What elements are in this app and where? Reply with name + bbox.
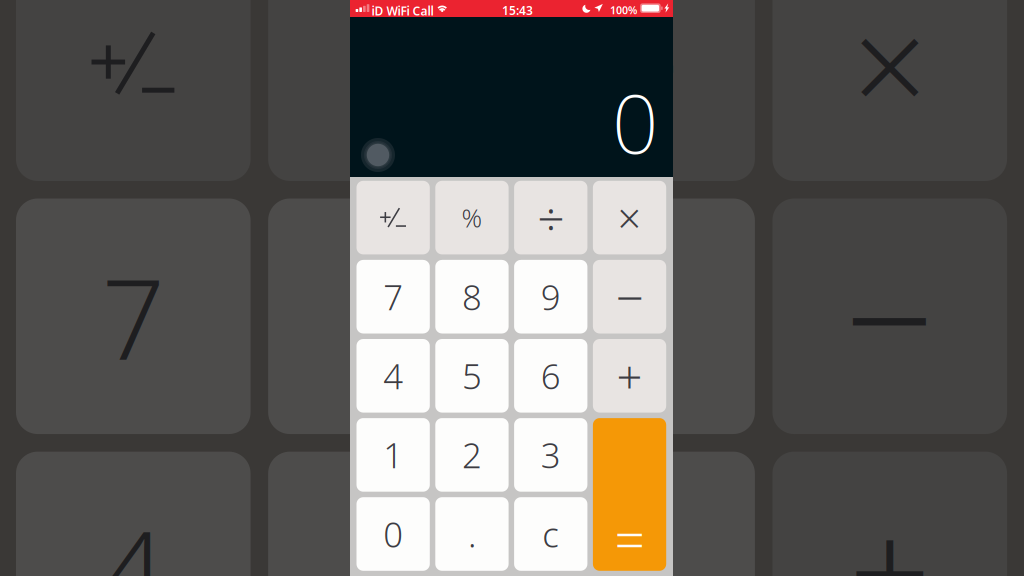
staticText: × <box>852 0 927 151</box>
button[interactable]: × <box>593 181 666 254</box>
staticText: % <box>461 201 482 234</box>
button[interactable]: 6 <box>520 452 755 576</box>
button[interactable]: 1 <box>356 418 430 492</box>
button[interactable]: . <box>435 497 509 571</box>
staticText: 9 <box>606 243 669 390</box>
staticText: 4 <box>383 353 403 399</box>
staticText: 100% <box>610 3 637 17</box>
staticText: ÷ <box>537 186 564 249</box>
staticText: 7 <box>102 243 165 390</box>
staticText: c <box>542 511 559 557</box>
button[interactable]: = <box>593 418 666 571</box>
staticText: 8 <box>354 243 417 390</box>
button[interactable]: − <box>593 260 666 333</box>
button[interactable]: 6 <box>514 339 587 413</box>
staticText: − <box>615 264 643 329</box>
staticText: . <box>468 511 476 557</box>
staticText: 3 <box>541 432 561 478</box>
staticText: 4 <box>102 496 165 576</box>
staticText: 5 <box>462 353 482 399</box>
button[interactable]: 4 <box>16 452 251 576</box>
button[interactable]: 3 <box>514 418 587 492</box>
button[interactable]: + <box>772 452 1007 576</box>
button[interactable]: c <box>514 497 587 571</box>
staticText: ÷ <box>594 0 682 165</box>
staticText: − <box>845 212 935 421</box>
button[interactable]: % <box>268 0 503 181</box>
button[interactable]: 7 <box>16 198 251 434</box>
staticText: iD WiFi Call <box>371 3 433 19</box>
staticText: × <box>617 190 641 245</box>
button[interactable]: 4 <box>356 339 430 413</box>
staticText: 2 <box>462 432 482 478</box>
staticText: 9 <box>541 274 561 320</box>
button[interactable]: 5 <box>435 339 509 413</box>
button[interactable]: 7 <box>356 260 430 333</box>
button[interactable]: plus minus <box>16 0 251 181</box>
button[interactable]: plus minus <box>356 181 430 254</box>
staticText: + <box>849 474 931 576</box>
staticText: % <box>353 10 418 116</box>
staticText: 1 <box>383 432 403 478</box>
staticText: 15:43 <box>502 2 533 18</box>
staticText: 0 <box>612 68 658 176</box>
staticText: 5 <box>354 496 417 576</box>
staticText: 6 <box>606 496 669 576</box>
button[interactable]: × <box>772 0 1007 181</box>
button[interactable]: 9 <box>514 260 587 333</box>
staticText: 8 <box>462 274 482 320</box>
button[interactable]: % <box>435 181 509 254</box>
button[interactable]: − <box>772 198 1007 434</box>
button[interactable]: ÷ <box>514 181 587 254</box>
button[interactable]: 8 <box>435 260 509 333</box>
staticText: 6 <box>541 353 561 399</box>
staticText: + <box>616 346 642 406</box>
button[interactable]: 0 <box>356 497 430 571</box>
button[interactable]: AssistiveTouch <box>361 138 395 172</box>
staticText: 0 <box>383 511 403 557</box>
staticText: 7 <box>383 274 403 320</box>
button[interactable]: 9 <box>520 198 755 434</box>
button[interactable]: 2 <box>435 418 509 492</box>
button[interactable]: ÷ <box>520 0 755 181</box>
button[interactable]: + <box>593 339 666 413</box>
staticText: = <box>614 503 644 574</box>
button[interactable]: 5 <box>268 452 503 576</box>
button[interactable]: 8 <box>268 198 503 434</box>
